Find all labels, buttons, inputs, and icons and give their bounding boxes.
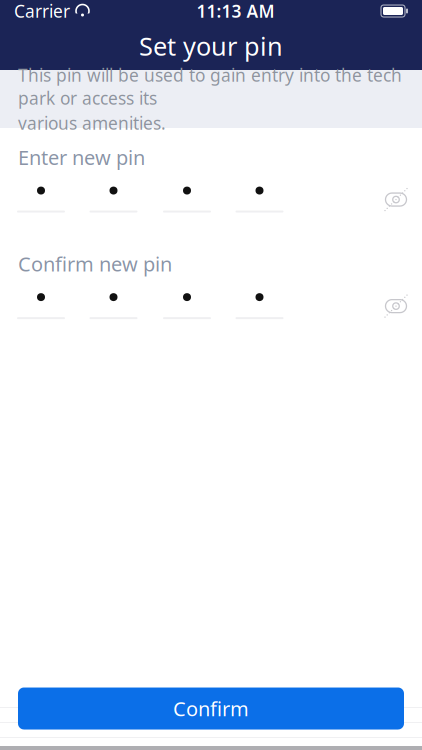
staticText: various amenities. xyxy=(18,111,166,134)
button[interactable]: Show pin xyxy=(374,284,418,328)
button[interactable]: Show pin xyxy=(374,178,418,222)
staticText: Set your pin xyxy=(139,29,283,63)
staticText: 11:13 AM xyxy=(196,0,274,22)
staticText: Confirm xyxy=(173,695,249,722)
button[interactable]: Confirm xyxy=(18,687,404,729)
staticText: Confirm new pin xyxy=(18,251,172,277)
staticText xyxy=(70,0,75,22)
staticText: Carrier xyxy=(14,0,70,22)
staticText: This pin will be used to gain entry into… xyxy=(18,63,402,109)
staticText: Enter new pin xyxy=(18,144,145,171)
